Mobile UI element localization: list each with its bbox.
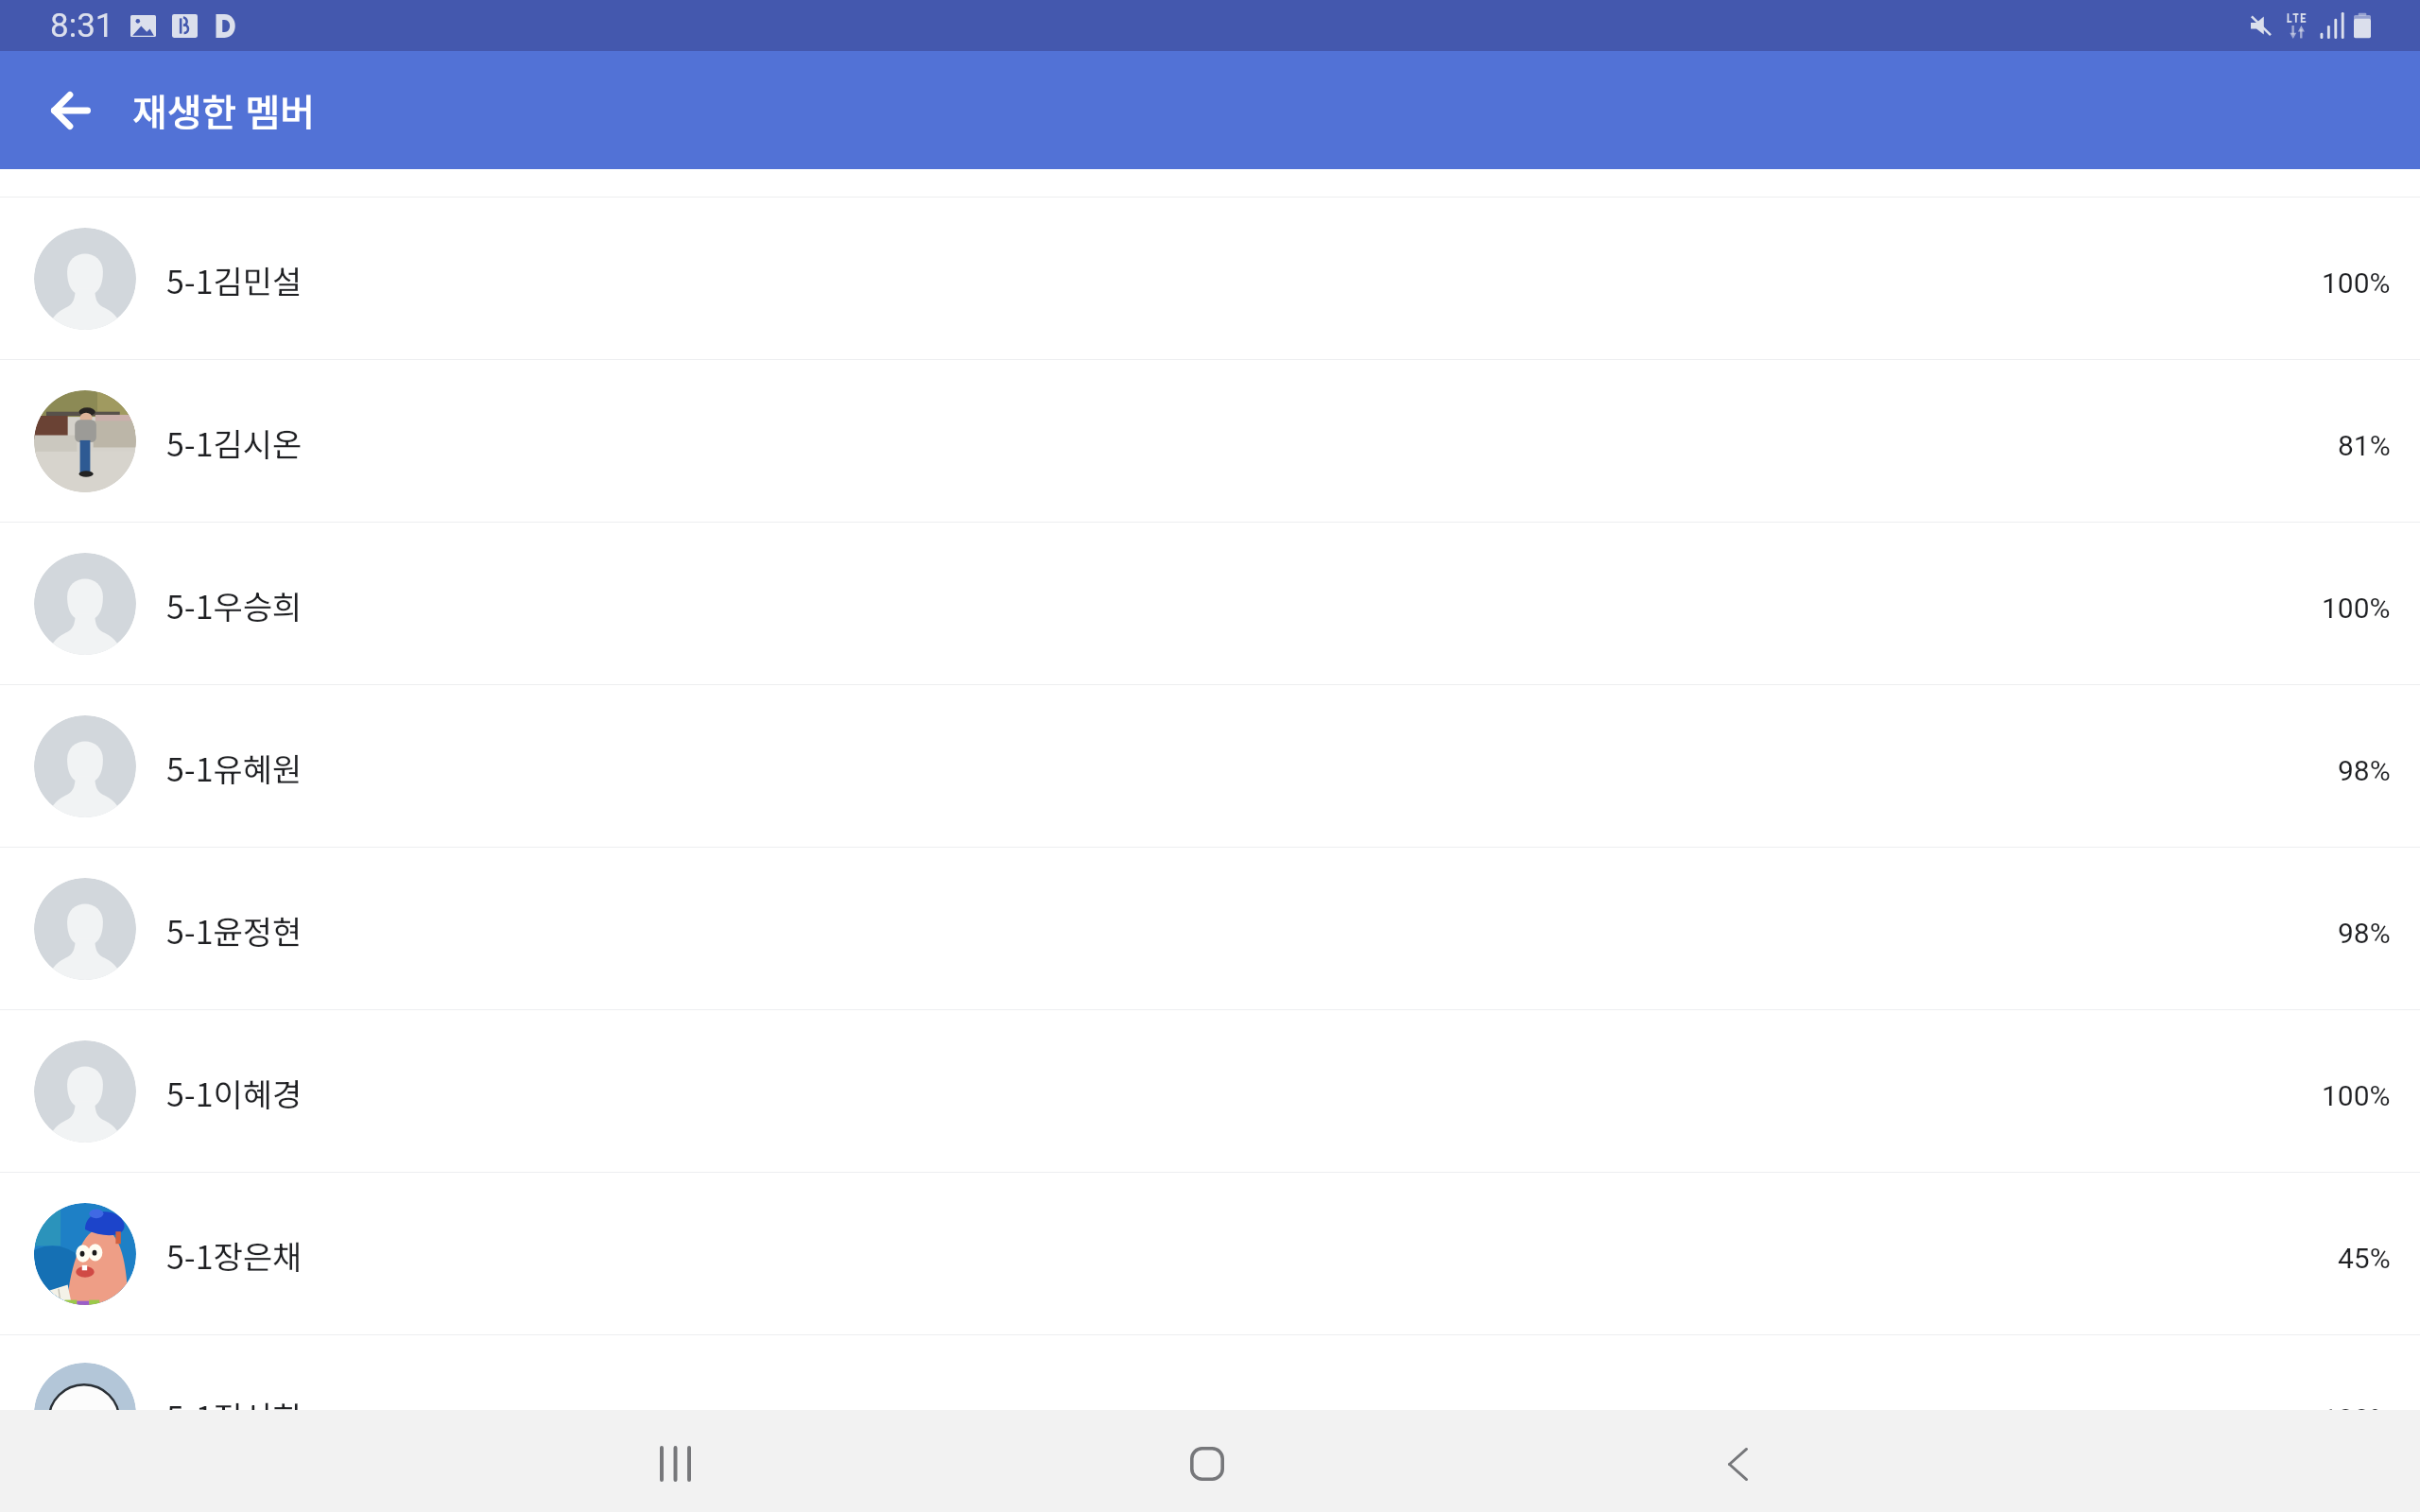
staticText: 5-1윤정현 xyxy=(166,907,302,954)
button[interactable]: Back xyxy=(31,71,111,150)
button[interactable]: 5-1윤정현 xyxy=(0,848,2420,1009)
staticText: 45% xyxy=(2338,1242,2391,1275)
staticText: 5-1유혜원 xyxy=(166,745,302,791)
button[interactable]: 5-1김민설 xyxy=(0,198,2420,359)
button[interactable]: 5-1김시온 xyxy=(0,360,2420,522)
button[interactable]: Home xyxy=(1156,1410,1258,1512)
staticText: 100% xyxy=(2322,592,2391,625)
staticText: 98% xyxy=(2338,917,2391,950)
staticText: 5-1장은채 xyxy=(166,1232,302,1279)
button[interactable]: Back xyxy=(1686,1410,1789,1512)
staticText: 8:31 xyxy=(50,7,114,45)
button[interactable]: 5-1유혜원 xyxy=(0,685,2420,847)
button[interactable]: Recent apps xyxy=(624,1410,726,1512)
button[interactable]: 5-1이혜경 xyxy=(0,1010,2420,1172)
staticText: 재생한 멤버 xyxy=(132,83,315,138)
staticText: 100% xyxy=(2322,266,2391,300)
staticText: 98% xyxy=(2338,754,2391,787)
staticText: 5-1김시온 xyxy=(166,420,302,466)
button[interactable]: 5-1우승희 xyxy=(0,523,2420,684)
staticText: 100% xyxy=(2322,1079,2391,1112)
button[interactable]: 5-1정서희 xyxy=(0,1335,2420,1492)
button[interactable]: 5-1장은채 xyxy=(0,1173,2420,1334)
staticText: 100% xyxy=(2322,1402,2391,1435)
staticText: 5-1김민설 xyxy=(166,257,302,303)
staticText: 5-1우승희 xyxy=(166,582,302,628)
staticText: 5-1정서희 xyxy=(166,1393,302,1439)
staticText: 81% xyxy=(2338,429,2391,462)
staticText: 5-1이혜경 xyxy=(166,1070,302,1116)
